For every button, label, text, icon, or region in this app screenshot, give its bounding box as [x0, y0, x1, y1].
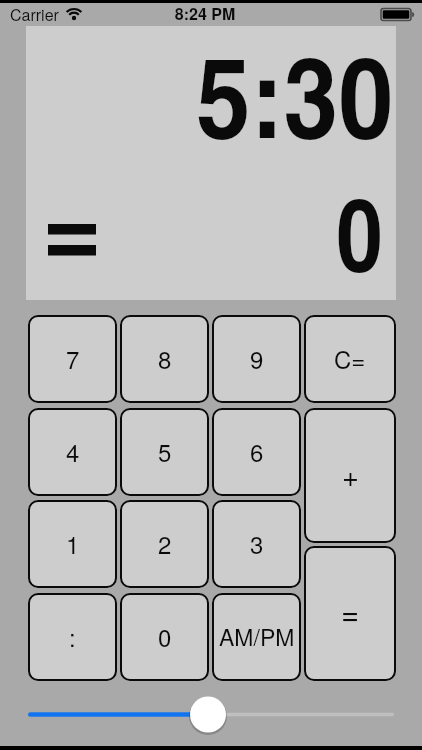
- staticText: 8:24 PM: [0, 2, 416, 25]
- button[interactable]: AM/PM: [212, 593, 301, 681]
- button[interactable]: 9: [212, 315, 301, 403]
- staticText: C=: [334, 341, 366, 375]
- button[interactable]: C=: [304, 315, 396, 403]
- staticText: 6: [250, 434, 264, 468]
- staticText: 8: [158, 341, 172, 375]
- button[interactable]: [190, 696, 226, 732]
- button[interactable]: 6: [212, 408, 301, 496]
- staticText: =: [341, 589, 360, 633]
- staticText: AM/PM: [219, 620, 295, 653]
- staticText: 5:30: [196, 14, 393, 172]
- staticText: 4: [66, 434, 80, 468]
- button[interactable]: =: [304, 546, 396, 681]
- button[interactable]: 5: [120, 408, 209, 496]
- staticText: 1: [66, 526, 80, 560]
- staticText: Carrier: [10, 3, 59, 26]
- staticText: 9: [250, 341, 264, 375]
- button[interactable]: 2: [120, 500, 209, 588]
- button[interactable]: 3: [212, 500, 301, 588]
- staticText: 3: [250, 526, 264, 560]
- staticText: :: [69, 619, 76, 653]
- staticText: 2: [158, 526, 172, 560]
- staticText: 0: [336, 158, 383, 302]
- staticText: +: [342, 454, 359, 496]
- staticText: 7: [66, 341, 80, 375]
- button[interactable]: 4: [28, 408, 117, 496]
- staticText: 0: [158, 619, 172, 653]
- button[interactable]: +: [304, 408, 396, 543]
- button[interactable]: 7: [28, 315, 117, 403]
- button[interactable]: :: [28, 593, 117, 681]
- button[interactable]: 0: [120, 593, 209, 681]
- staticText: 5: [158, 434, 172, 468]
- button[interactable]: 8: [120, 315, 209, 403]
- button[interactable]: 1: [28, 500, 117, 588]
